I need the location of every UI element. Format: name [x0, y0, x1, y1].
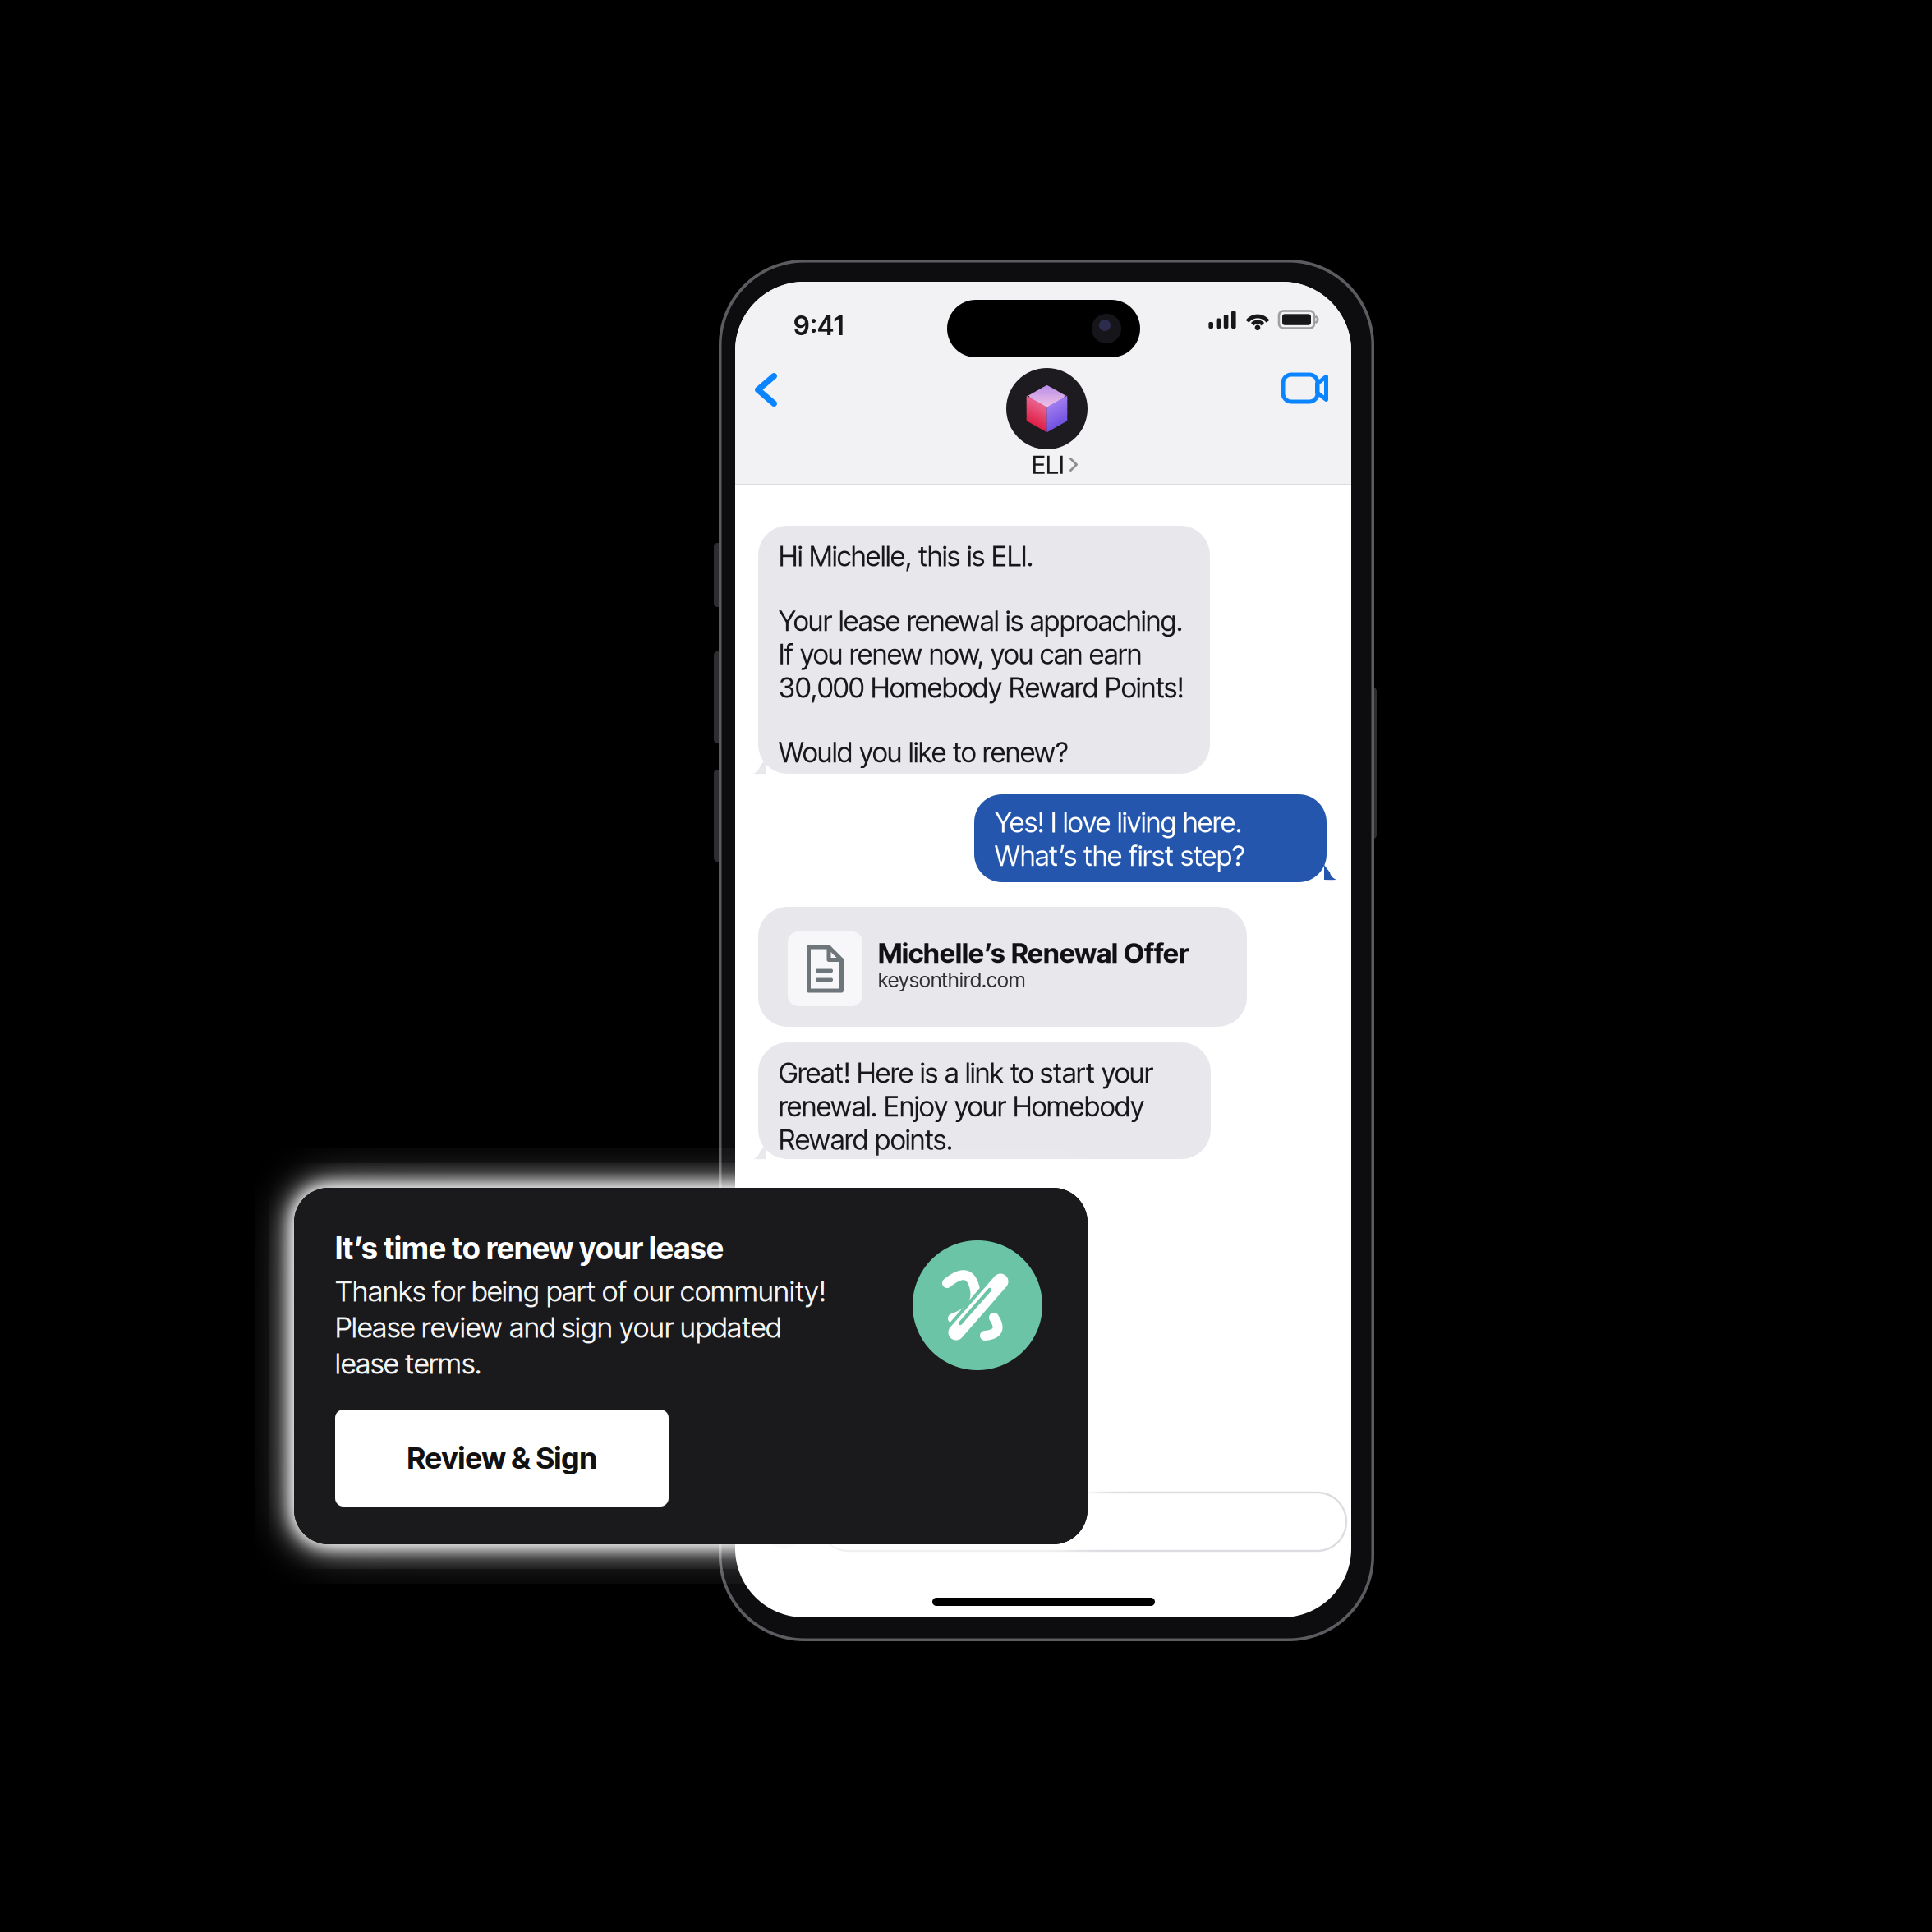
- button[interactable]: ELI: [977, 368, 1117, 483]
- staticText: keysonthird.com: [878, 968, 1025, 992]
- staticText: 9:41: [793, 310, 844, 341]
- staticText: Great! Here is a link to start your rene…: [779, 1056, 1153, 1157]
- staticText: Your lease renewal is approaching. If yo…: [779, 604, 1184, 705]
- staticText: Review & Sign: [407, 1440, 597, 1476]
- button[interactable]: Back: [741, 358, 791, 421]
- button[interactable]: FaceTime: [1273, 360, 1338, 416]
- button[interactable]: Review & Sign: [335, 1410, 669, 1506]
- button[interactable]: iMessage text field: [819, 1493, 1346, 1551]
- staticText: Michelle’s Renewal Offer: [878, 936, 1189, 969]
- staticText: Would you like to renew?: [779, 736, 1068, 769]
- staticText: Thanks for being part of our community! …: [335, 1274, 826, 1381]
- staticText: It’s time to renew your lease: [335, 1230, 724, 1266]
- staticText: ELI: [1032, 449, 1065, 480]
- staticText: Yes! I love living here. What’s the firs…: [995, 806, 1244, 873]
- button[interactable]: Add attachment: [758, 1497, 809, 1548]
- button[interactable]: Michelle’s Renewal Offer: [758, 907, 1247, 1027]
- staticText: Hi Michelle, this is ELI.: [779, 540, 1033, 573]
